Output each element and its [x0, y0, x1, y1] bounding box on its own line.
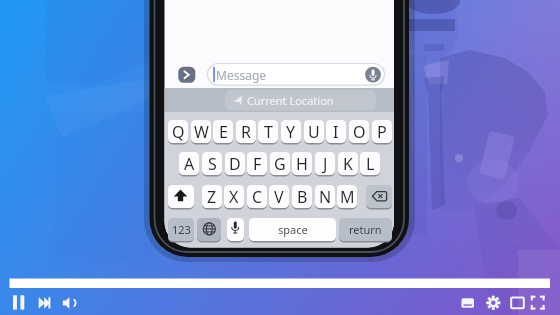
staticText: O	[353, 121, 366, 143]
button[interactable]: S	[202, 152, 222, 175]
button[interactable]: C	[247, 185, 267, 208]
button[interactable]: G	[270, 152, 290, 175]
staticText: K	[343, 153, 353, 175]
button[interactable]: return	[339, 218, 392, 241]
staticText: 123	[172, 222, 191, 237]
staticText: space	[278, 222, 308, 237]
staticText: R	[241, 121, 251, 143]
button[interactable]	[528, 292, 546, 312]
button[interactable]	[10, 292, 27, 312]
button[interactable]: R	[236, 120, 256, 143]
staticText: X	[229, 186, 239, 208]
staticText: F	[253, 153, 262, 175]
staticText: Y	[286, 121, 296, 143]
button[interactable]	[484, 292, 502, 312]
button[interactable]: Y	[281, 120, 301, 143]
button[interactable]: P	[372, 120, 392, 143]
button[interactable]: L	[360, 152, 380, 175]
button[interactable]: X	[224, 185, 244, 208]
button[interactable]: K	[338, 152, 358, 175]
staticText: B	[297, 186, 308, 208]
staticText: M	[340, 186, 355, 208]
button[interactable]	[227, 218, 244, 241]
button[interactable]	[508, 292, 526, 312]
button[interactable]: W	[191, 120, 211, 143]
button[interactable]: N	[315, 185, 335, 208]
button[interactable]: Current Location	[239, 89, 341, 111]
button[interactable]: E	[213, 120, 233, 143]
button[interactable]	[10, 276, 550, 289]
button[interactable]	[459, 292, 477, 312]
button[interactable]: O	[349, 120, 369, 143]
staticText: A	[184, 153, 195, 175]
button[interactable]	[178, 66, 196, 83]
button[interactable]: M	[337, 185, 357, 208]
button[interactable]: A	[179, 152, 199, 175]
button[interactable]	[197, 218, 221, 241]
staticText: Q	[172, 121, 185, 143]
staticText: D	[229, 153, 241, 175]
button[interactable]: T	[258, 120, 278, 143]
staticText: L	[366, 153, 375, 175]
staticText: return	[349, 222, 382, 237]
button[interactable]: U	[304, 120, 324, 143]
button[interactable]: space	[249, 218, 336, 241]
staticText: H	[296, 153, 308, 175]
button[interactable]: B	[292, 185, 312, 208]
button[interactable]: V	[269, 185, 289, 208]
staticText: J	[323, 153, 328, 175]
staticText: P	[377, 121, 387, 143]
button[interactable]: J	[315, 152, 335, 175]
staticText: V	[274, 186, 284, 208]
button[interactable]	[36, 292, 53, 312]
staticText: Message	[216, 67, 267, 83]
button[interactable]: D	[225, 152, 245, 175]
button[interactable]	[366, 185, 392, 208]
staticText: G	[274, 153, 286, 175]
button[interactable]: H	[292, 152, 312, 175]
staticText: C	[252, 186, 263, 208]
staticText: S	[208, 153, 217, 175]
button[interactable]: 123	[168, 218, 194, 241]
staticText: T	[264, 121, 273, 143]
button[interactable]: Q	[168, 120, 188, 143]
button[interactable]: I	[326, 120, 346, 143]
staticText: N	[319, 186, 332, 208]
staticText: U	[308, 121, 320, 143]
button[interactable]: Z	[202, 185, 222, 208]
staticText: E	[219, 121, 228, 143]
button[interactable]	[168, 185, 194, 208]
staticText: W	[194, 121, 209, 143]
button[interactable]	[364, 66, 382, 83]
button[interactable]: Message	[216, 64, 296, 86]
button[interactable]	[60, 292, 77, 312]
staticText: I	[333, 121, 339, 143]
button[interactable]: F	[247, 152, 267, 175]
staticText: Current Location	[247, 93, 334, 108]
staticText: Z	[207, 186, 217, 208]
